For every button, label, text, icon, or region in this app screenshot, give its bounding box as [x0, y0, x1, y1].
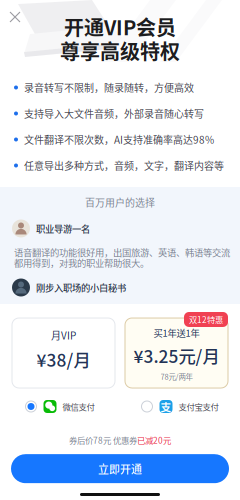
- staticText: 百万用户的选择: [85, 195, 155, 209]
- staticText: 任意导出多种方式，音频，文字，翻译内容等: [24, 158, 224, 173]
- staticText: 立即开通: [98, 461, 142, 476]
- staticText: 职业导游一名: [36, 222, 90, 235]
- staticText: 买1年送1年: [153, 326, 199, 339]
- button[interactable]: 买1年送1年: [125, 318, 228, 388]
- button[interactable]: 立即开通: [11, 454, 229, 483]
- staticText: 支付宝支付: [178, 400, 218, 413]
- button[interactable]: 月VIP: [12, 318, 115, 388]
- button[interactable]: 关闭: [5, 7, 25, 27]
- staticText: 都用得到，对我的职业帮助很大。: [14, 256, 149, 269]
- staticText: 微信支付: [62, 400, 94, 413]
- button[interactable]: 支: [120, 400, 240, 413]
- staticText: 刚步入职场的小白秘书: [36, 281, 126, 294]
- staticText: 语音翻译的功能很好用，出国旅游、英语、韩语等交流: [14, 245, 230, 259]
- staticText: 文件翻译不限次数，AI支持准确率高达98%: [24, 132, 214, 147]
- staticText: 已减20元: [137, 434, 171, 446]
- staticText: 尊享高级特权: [60, 36, 180, 65]
- staticText: 双12特惠: [189, 313, 223, 325]
- staticText: 录音转写不限制，随录随转，方便高效: [24, 80, 194, 95]
- staticText: 支: [160, 399, 171, 414]
- staticText: 78元/两年: [160, 371, 192, 382]
- button[interactable]: 微信支付: [0, 400, 120, 413]
- staticText: 券后价78元 优惠券: [69, 434, 137, 446]
- staticText: 月VIP: [51, 328, 76, 342]
- staticText: 开通VIP会员: [64, 12, 176, 41]
- staticText: ¥3.25元/月: [133, 343, 219, 368]
- staticText: 支持导入大文件音频，外部录音随心转写: [24, 106, 204, 121]
- staticText: ¥38/月: [36, 347, 90, 372]
